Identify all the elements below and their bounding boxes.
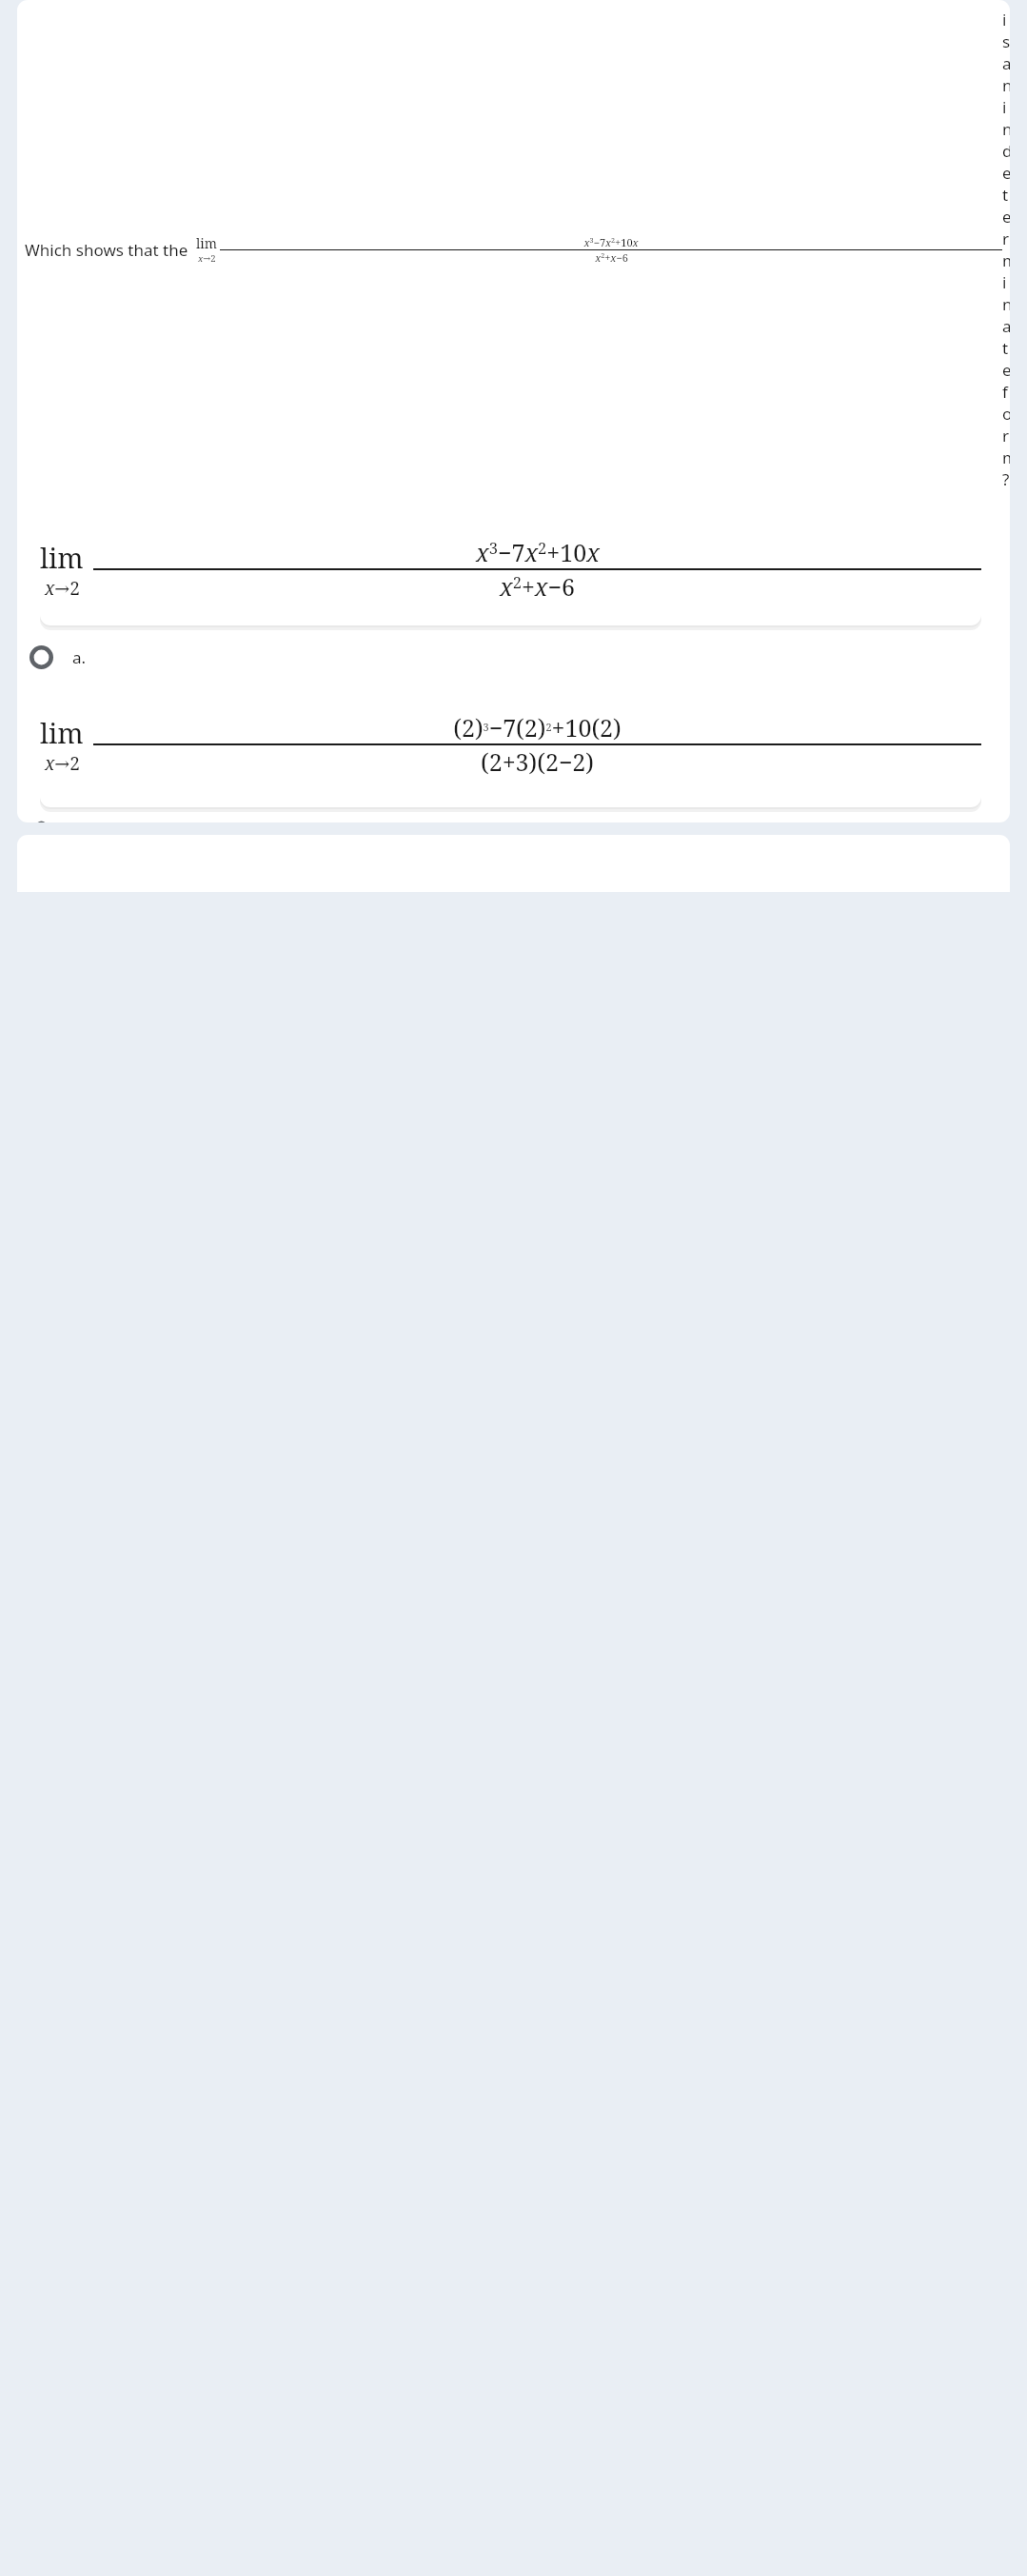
staticText: x→2 [45,576,80,601]
staticText: x2+x−6 [500,570,575,603]
staticText: (2)3−7(2)2+10(2) [453,711,622,743]
staticText: a. [72,646,87,668]
staticText: x→2 [45,751,80,776]
staticText: x2+x−6 [595,250,628,265]
staticText: lim [196,234,218,252]
button[interactable]: Answer option b formula [40,682,981,807]
staticText: (2+3)(2−2) [481,745,594,778]
staticText: x3−7x2+10x [583,235,639,249]
button[interactable]: Answer option a formula [40,512,981,625]
staticText: x→2 [198,252,216,265]
button[interactable]: Option a [17,631,1010,682]
staticText: Which shows that the [25,239,188,261]
staticText: lim [40,539,84,576]
staticText: lim [40,714,84,751]
staticText: x3−7x2+10x [476,536,600,568]
